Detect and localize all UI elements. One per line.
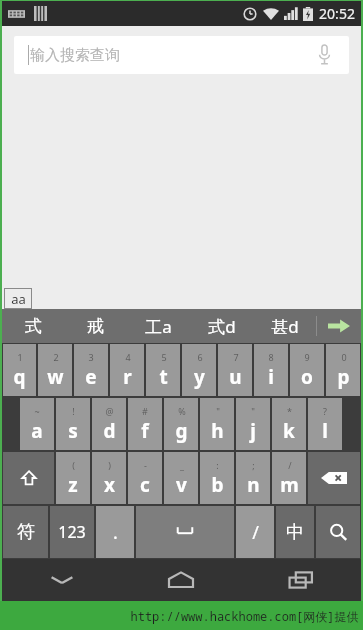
button[interactable]: 9: [290, 344, 324, 396]
staticText: g: [175, 418, 188, 444]
staticText: 中: [286, 521, 304, 544]
staticText: ?: [323, 405, 327, 417]
staticText: r: [123, 364, 132, 390]
button[interactable]: (: [56, 452, 90, 504]
staticText: 3: [88, 351, 94, 363]
staticText: .: [113, 520, 118, 545]
staticText: 5: [161, 351, 167, 363]
button[interactable]: .: [96, 506, 134, 558]
staticText: 20:52: [319, 4, 355, 23]
button[interactable]: 中: [276, 506, 314, 558]
staticText: 输入搜索查询: [30, 46, 120, 65]
staticText: c: [140, 472, 150, 498]
button[interactable]: 甚d: [253, 309, 316, 343]
staticText: (: [72, 459, 75, 471]
button[interactable]: 式: [2, 309, 64, 343]
staticText: v: [176, 472, 187, 498]
staticText: /: [252, 520, 259, 545]
staticText: http://www.hackhome.com[网侠]提供: [130, 608, 359, 624]
button[interactable]: Home: [121, 559, 241, 601]
staticText: 4: [125, 351, 131, 363]
button[interactable]: 123: [50, 506, 94, 558]
button[interactable]: _: [164, 452, 198, 504]
button[interactable]: Recent apps: [241, 559, 361, 601]
staticText: #: [142, 405, 148, 417]
button[interactable]: @: [92, 398, 126, 450]
button[interactable]: :: [200, 452, 234, 504]
button[interactable]: 8: [254, 344, 288, 396]
button[interactable]: Search: [316, 506, 360, 558]
button[interactable]: /: [272, 452, 306, 504]
button[interactable]: Backspace: [308, 452, 360, 504]
staticText: h: [211, 418, 224, 444]
staticText: z: [68, 472, 78, 498]
staticText: a: [31, 418, 43, 444]
staticText: 0: [341, 351, 347, 363]
staticText: ": [251, 405, 255, 417]
staticText: w: [47, 364, 64, 390]
staticText: ~: [34, 405, 40, 417]
button[interactable]: 输入搜索查询: [14, 36, 349, 74]
button[interactable]: 5: [146, 344, 180, 396]
button[interactable]: ?: [308, 398, 342, 450]
button[interactable]: Space: [136, 506, 234, 558]
staticText: s: [68, 418, 78, 444]
staticText: k: [283, 418, 295, 444]
staticText: 1: [17, 351, 23, 363]
button[interactable]: 7: [218, 344, 252, 396]
button[interactable]: 3: [74, 344, 108, 396]
button[interactable]: More candidates: [317, 309, 361, 343]
staticText: %: [178, 405, 186, 417]
button[interactable]: ;: [236, 452, 270, 504]
button[interactable]: %: [164, 398, 198, 450]
staticText: !: [72, 405, 75, 417]
staticText: m: [280, 472, 299, 498]
button[interactable]: 戒: [64, 309, 127, 343]
button[interactable]: -: [128, 452, 162, 504]
button[interactable]: 0: [326, 344, 360, 396]
staticText: 式d: [208, 315, 236, 338]
staticText: 8: [268, 351, 274, 363]
button[interactable]: 4: [110, 344, 144, 396]
button[interactable]: #: [128, 398, 162, 450]
staticText: x: [104, 472, 115, 498]
button[interactable]: ): [92, 452, 126, 504]
button[interactable]: ": [200, 398, 234, 450]
button[interactable]: 式d: [190, 309, 253, 343]
staticText: ": [216, 405, 220, 417]
staticText: 6: [197, 351, 203, 363]
staticText: d: [103, 418, 116, 444]
staticText: t: [159, 364, 168, 390]
button[interactable]: *: [272, 398, 306, 450]
staticText: -: [144, 459, 147, 471]
button[interactable]: Voice search: [311, 42, 337, 68]
staticText: ): [108, 459, 111, 471]
staticText: /: [288, 459, 292, 471]
button[interactable]: Shift: [3, 452, 54, 504]
staticText: :: [216, 459, 219, 471]
button[interactable]: ": [236, 398, 270, 450]
staticText: 9: [304, 351, 310, 363]
staticText: e: [85, 364, 97, 390]
staticText: _: [180, 459, 184, 471]
staticText: ;: [252, 459, 255, 471]
button[interactable]: 6: [182, 344, 216, 396]
staticText: u: [229, 364, 242, 390]
staticText: 甚d: [271, 315, 299, 338]
staticText: *: [287, 405, 292, 417]
button[interactable]: ~: [20, 398, 54, 450]
staticText: p: [337, 364, 350, 390]
button[interactable]: /: [236, 506, 274, 558]
staticText: o: [301, 364, 313, 390]
button[interactable]: aa: [5, 289, 31, 308]
staticText: aa: [11, 290, 26, 308]
staticText: q: [13, 364, 26, 390]
button[interactable]: 符: [3, 506, 48, 558]
button[interactable]: !: [56, 398, 90, 450]
button[interactable]: 工a: [127, 309, 190, 343]
button[interactable]: Back: [2, 559, 121, 601]
staticText: y: [194, 364, 205, 390]
staticText: 工a: [145, 315, 172, 338]
button[interactable]: 2: [38, 344, 72, 396]
button[interactable]: 1: [3, 344, 36, 396]
